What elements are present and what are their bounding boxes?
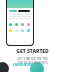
button[interactable]: Next	[30, 62, 44, 72]
button[interactable]: LEARN MORE	[13, 63, 33, 67]
staticText: LEARN MORE	[13, 63, 33, 67]
staticText: GET STARTED ON THE TOP OF YOUR DEVICE	[17, 57, 48, 65]
staticText: GET STARTED	[16, 48, 49, 55]
